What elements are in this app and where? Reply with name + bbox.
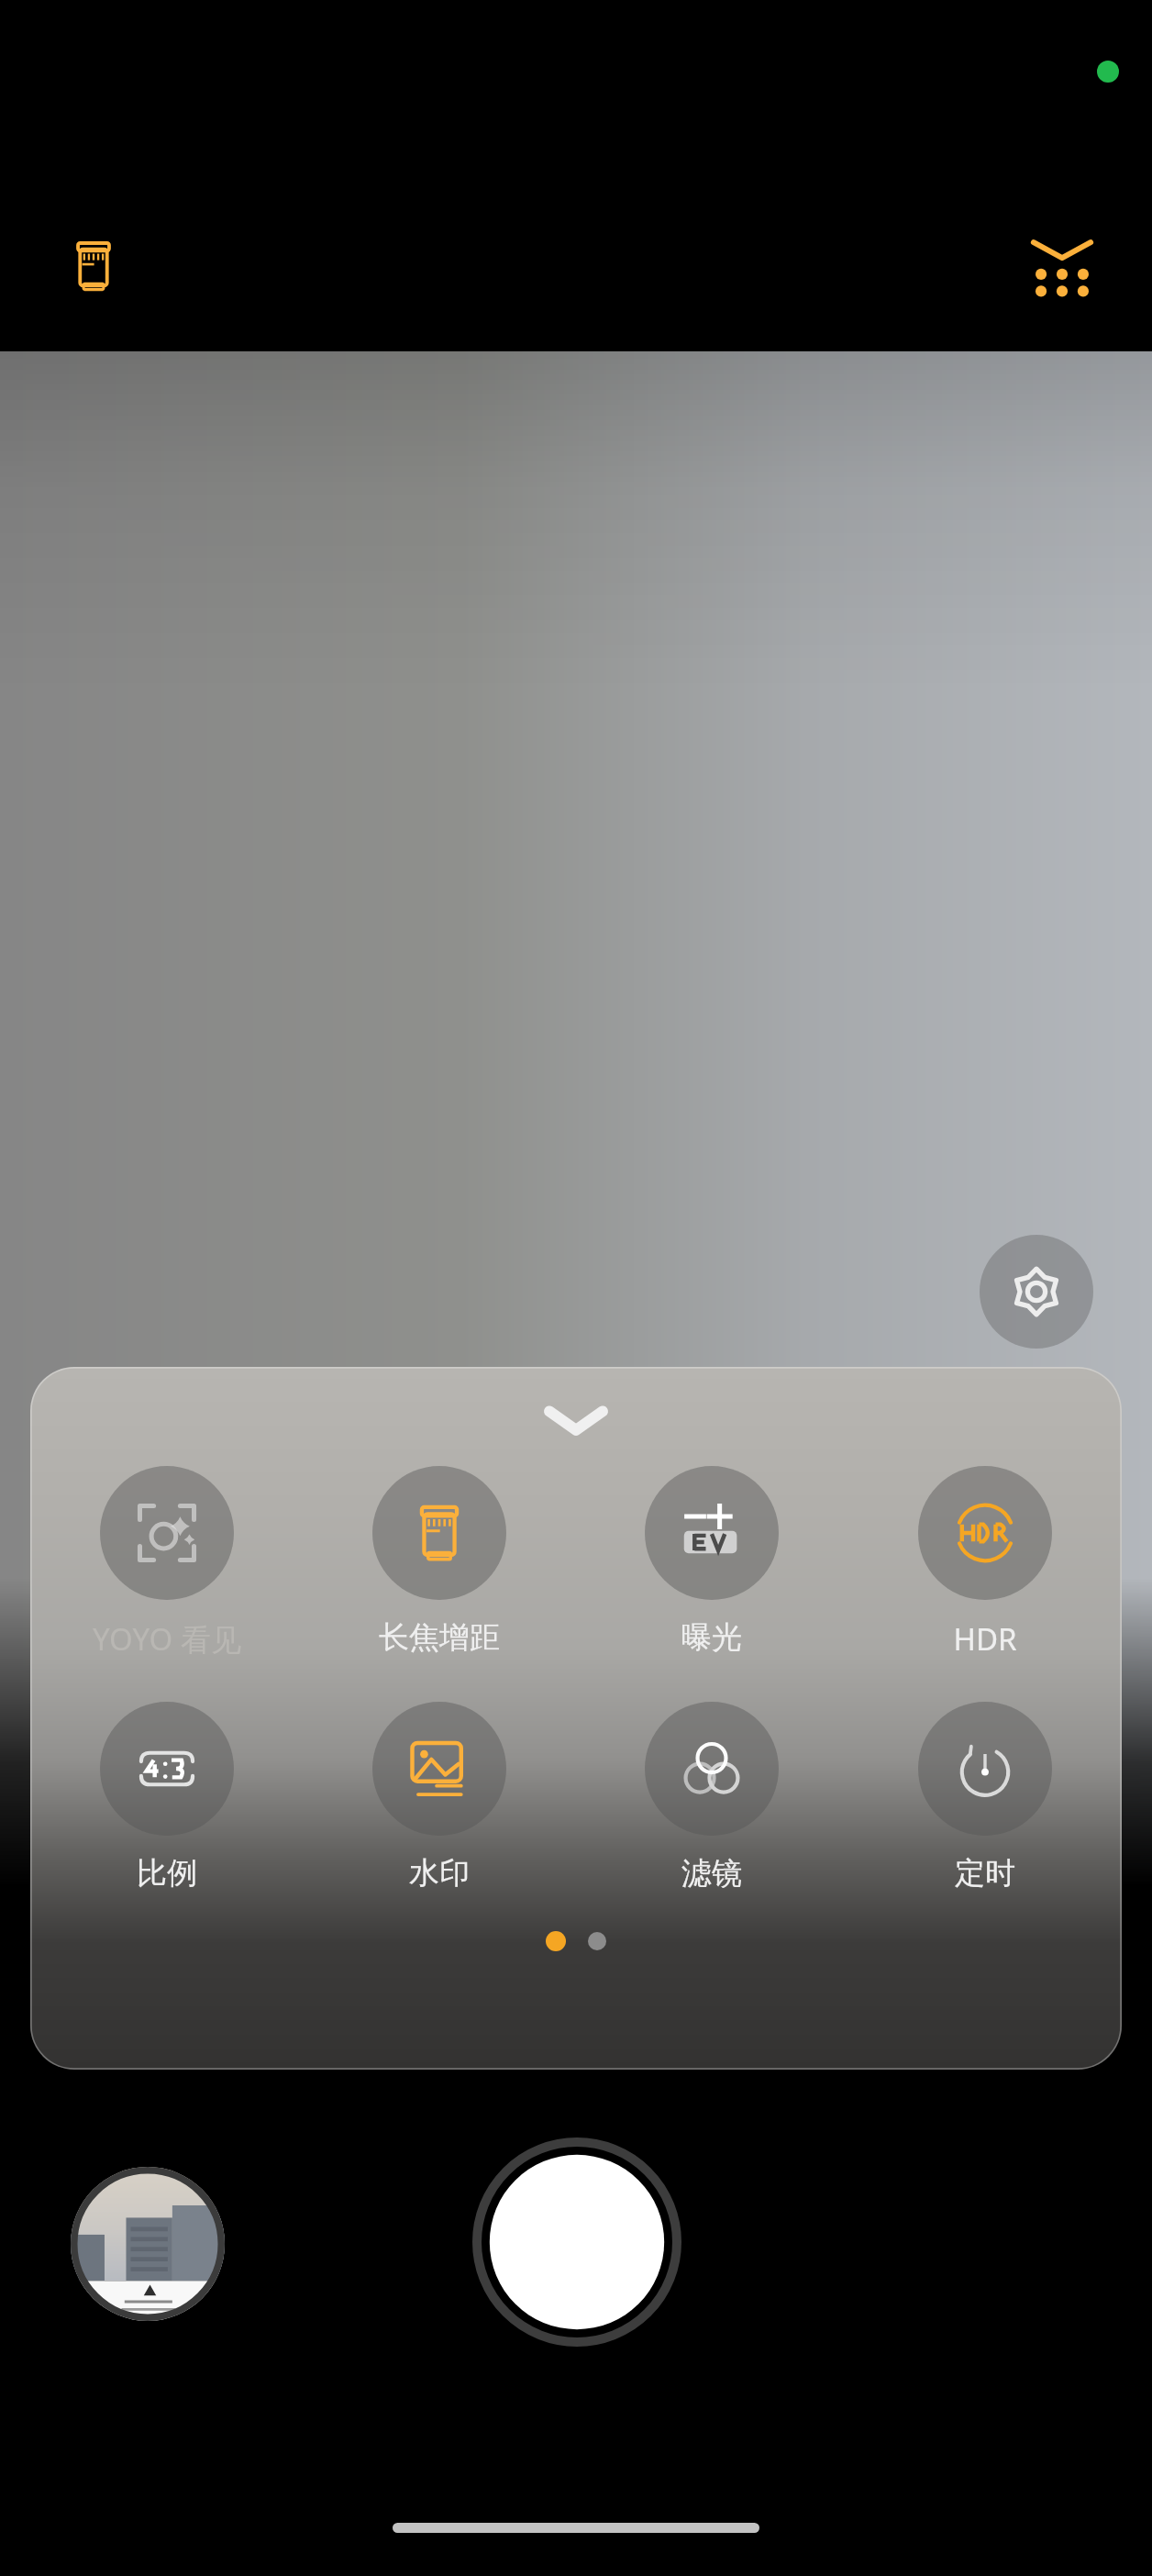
button[interactable]: Telephoto lens — [48, 220, 139, 312]
staticText: 定时 — [955, 1854, 1015, 1893]
button[interactable]: HDR — [848, 1464, 1122, 1661]
button[interactable]: YOYO 看见 — [30, 1464, 303, 1661]
button[interactable]: Shutter — [472, 2137, 681, 2347]
staticText: 比例 — [137, 1854, 197, 1893]
button[interactable]: 曝光 — [575, 1464, 848, 1659]
button[interactable]: 长焦增距 — [303, 1464, 575, 1659]
staticText: HDR — [953, 1618, 1017, 1660]
button[interactable]: Gallery — [71, 2167, 225, 2321]
button[interactable]: 比例 — [30, 1700, 303, 1894]
button[interactable]: 滤镜 — [575, 1700, 848, 1894]
button[interactable]: 水印 — [303, 1700, 575, 1894]
staticText: 滤镜 — [681, 1854, 742, 1893]
button[interactable]: More modes — [1014, 218, 1110, 314]
button[interactable]: Settings — [980, 1235, 1093, 1349]
button[interactable]: 定时 — [848, 1700, 1122, 1894]
staticText: YOYO 看见 — [93, 1618, 241, 1660]
staticText: 长焦增距 — [379, 1618, 500, 1657]
button[interactable]: Collapse panel — [512, 1398, 640, 1442]
staticText: 水印 — [409, 1854, 470, 1893]
staticText: 曝光 — [681, 1618, 742, 1657]
